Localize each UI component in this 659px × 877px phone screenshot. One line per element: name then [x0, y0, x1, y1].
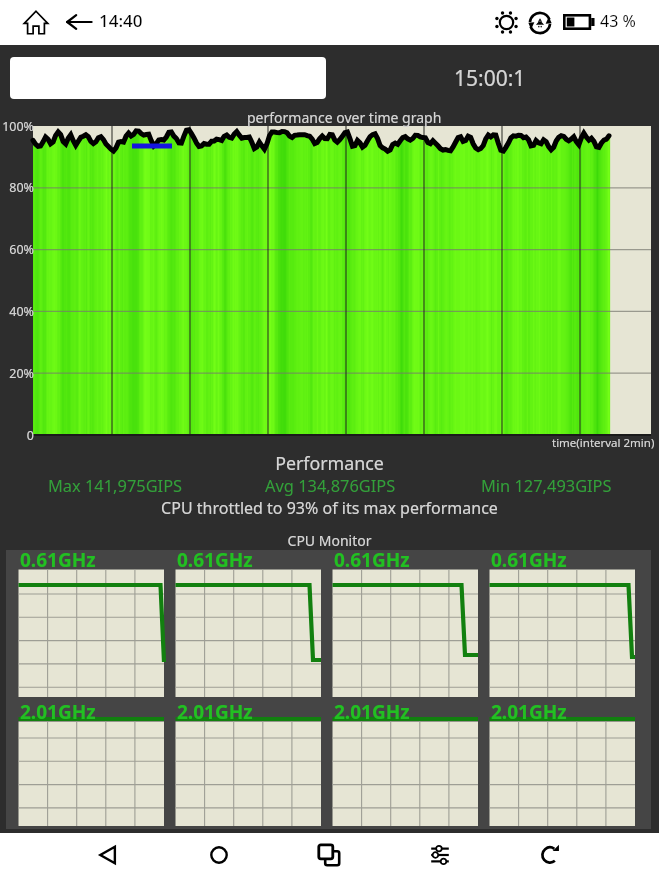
- button[interactable]: Refresh: [528, 833, 572, 877]
- staticText: 2.01GHz: [177, 699, 253, 725]
- button[interactable]: Back: [65, 11, 93, 33]
- staticText: 43 %: [600, 10, 636, 32]
- staticText: 0.61GHz: [491, 547, 567, 573]
- staticText: 20%: [0, 365, 34, 382]
- staticText: 0.61GHz: [334, 547, 410, 573]
- staticText: CPU Monitor: [0, 531, 659, 550]
- button[interactable]: Home: [197, 833, 241, 877]
- staticText: 2.01GHz: [20, 699, 96, 725]
- button[interactable]: Recents: [307, 833, 351, 877]
- staticText: performance over time graph: [247, 108, 442, 127]
- staticText: 15:00:1: [454, 64, 526, 93]
- staticText: Min 127,493GIPS: [481, 474, 612, 496]
- staticText: Avg 134,876GIPS: [265, 474, 396, 496]
- staticText: 2.01GHz: [491, 699, 567, 725]
- staticText: 80%: [0, 179, 34, 196]
- staticText: 40%: [0, 303, 34, 320]
- staticText: 60%: [0, 241, 34, 258]
- staticText: CPU throttled to 93% of its max performa…: [0, 497, 659, 519]
- staticText: 0.61GHz: [177, 547, 253, 573]
- staticText: 14:40: [99, 9, 143, 32]
- staticText: Max 141,975GIPS: [48, 474, 183, 496]
- button[interactable]: Home: [24, 11, 48, 34]
- staticText: Performance: [0, 451, 659, 475]
- staticText: 100%: [0, 118, 34, 135]
- staticText: time(interval 2min): [552, 435, 655, 451]
- staticText: 0.61GHz: [20, 547, 96, 573]
- button[interactable]: [10, 57, 326, 99]
- staticText: 0: [0, 427, 34, 444]
- staticText: 2.01GHz: [334, 699, 410, 725]
- button[interactable]: Settings: [418, 833, 462, 877]
- button[interactable]: Back: [86, 833, 130, 877]
